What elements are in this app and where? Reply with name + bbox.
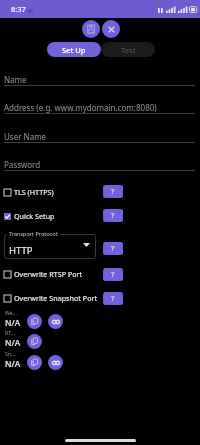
staticText: N/A [5, 317, 21, 328]
staticText: 8:37 [11, 4, 26, 14]
staticText: Overwrite RTSP Port [14, 269, 83, 279]
staticText: HTTP [9, 244, 33, 257]
button[interactable]: Quick Setup [4, 208, 102, 224]
button[interactable]: Help [103, 268, 123, 281]
button[interactable]: Help [103, 209, 123, 222]
staticText: User Name [4, 131, 47, 142]
button[interactable]: HTTP [4, 234, 96, 259]
staticText: RT... [5, 329, 15, 336]
staticText: We... [5, 309, 17, 316]
button[interactable]: Overwrite RTSP Port [4, 266, 102, 282]
button[interactable]: Test [101, 42, 155, 57]
button[interactable]: Save [82, 20, 100, 38]
button[interactable]: Open link [48, 355, 63, 370]
button[interactable]: TLS (HTTPS) [4, 184, 102, 200]
button[interactable]: Copy [27, 334, 42, 349]
button[interactable]: Copy [27, 355, 42, 370]
staticText: TLS (HTTPS) [14, 187, 54, 197]
staticText: Transport Protocol: [9, 230, 59, 237]
button[interactable]: Help [103, 185, 123, 198]
staticText: Name [4, 74, 27, 85]
button[interactable]: Open link [48, 314, 63, 329]
staticText: Overwrite Snapshot Port [14, 293, 98, 303]
button[interactable]: Overwrite Snapshot Port [4, 290, 102, 306]
button[interactable]: Close [102, 20, 120, 38]
staticText: Test [121, 45, 136, 55]
button[interactable]: Help [103, 292, 123, 305]
button[interactable]: Set Up [47, 42, 101, 57]
staticText: Address (e.g. www.mydomain.com:8080) [4, 102, 157, 113]
button[interactable]: Copy [27, 314, 42, 329]
staticText: Password [4, 159, 41, 170]
staticText: ? [111, 270, 115, 280]
staticText: Set Up [62, 45, 86, 55]
staticText: N/A [5, 337, 21, 348]
staticText: Quick Setup [14, 211, 55, 221]
staticText: Sn... [5, 350, 16, 357]
staticText: ? [111, 244, 115, 254]
staticText: N/A [5, 358, 21, 369]
staticText: ? [111, 294, 115, 304]
staticText: ? [111, 187, 115, 197]
button[interactable]: Help [103, 242, 123, 255]
staticText: ? [111, 211, 115, 221]
